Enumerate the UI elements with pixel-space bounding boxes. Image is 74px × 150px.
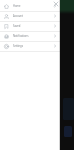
button[interactable]: Settings [0, 41, 60, 51]
button[interactable]: Close navigation drawer [52, 0, 60, 8]
staticText: Home [13, 4, 21, 8]
button[interactable]: Saved [0, 21, 60, 31]
staticText: Settings [13, 44, 23, 48]
button[interactable]: Notifications [0, 31, 60, 41]
staticText: Saved [13, 24, 21, 28]
staticText: Account [13, 14, 23, 18]
staticText: Notifications [13, 34, 29, 38]
button[interactable]: Account [0, 11, 60, 21]
button[interactable]: Home [0, 1, 60, 11]
